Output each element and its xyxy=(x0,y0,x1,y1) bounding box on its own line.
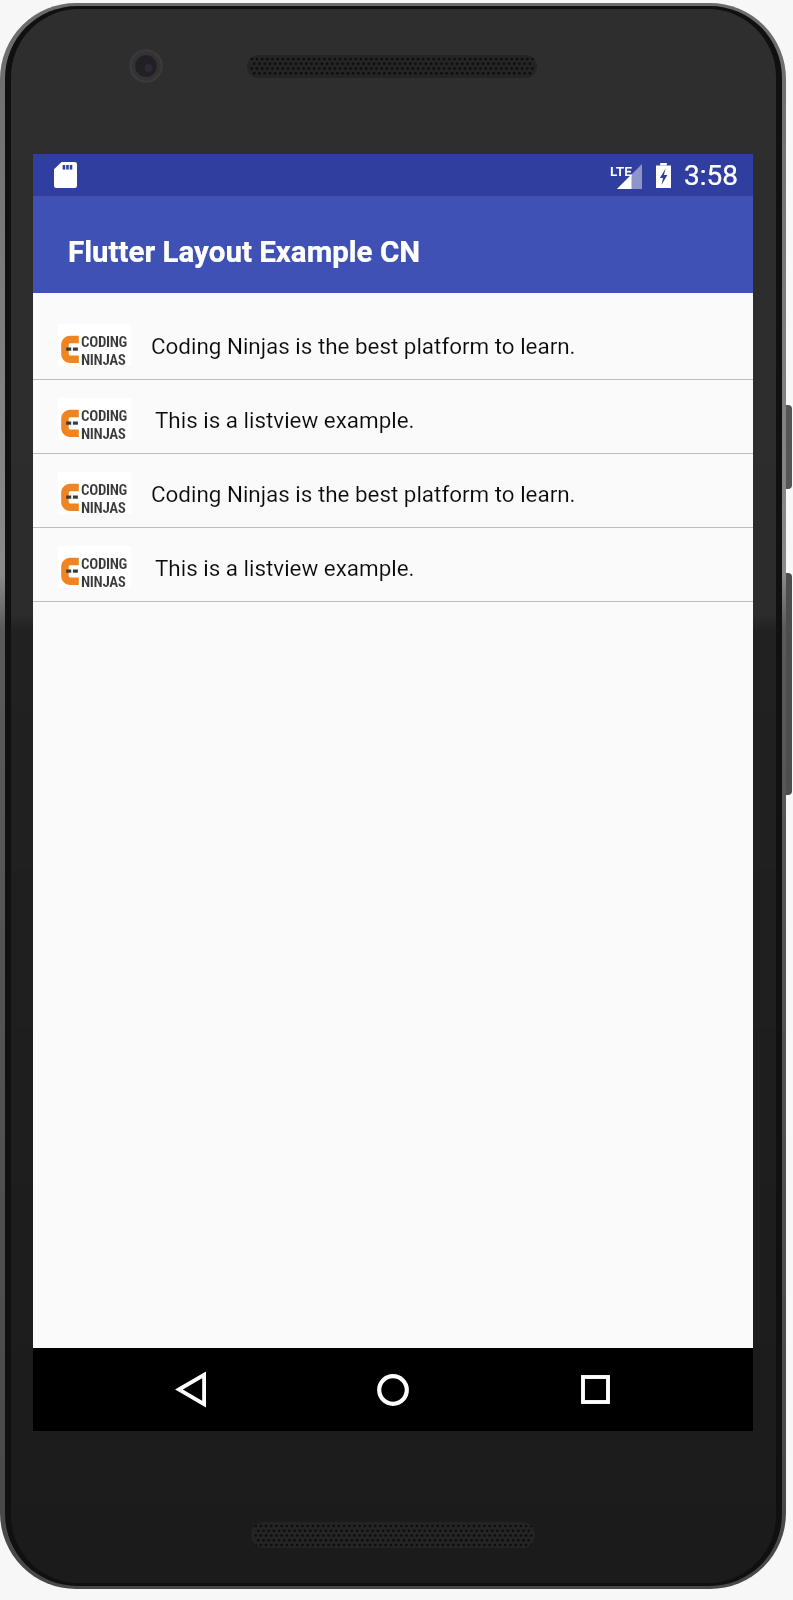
staticText: NINJAS xyxy=(81,499,126,517)
staticText: LTE xyxy=(610,163,632,179)
staticText: Flutter Layout Example CN xyxy=(68,235,421,270)
button[interactable]: Home xyxy=(343,1348,443,1431)
button[interactable]: CODING xyxy=(33,454,753,527)
button[interactable]: CODING xyxy=(33,306,753,379)
button[interactable]: Back xyxy=(141,1348,241,1431)
staticText: NINJAS xyxy=(81,573,126,591)
staticText: NINJAS xyxy=(81,351,126,369)
staticText: Coding Ninjas is the best platform to le… xyxy=(151,333,576,359)
staticText: CODING xyxy=(81,481,128,499)
staticText: This is a listview example. xyxy=(155,407,415,433)
staticText: CODING xyxy=(81,555,128,573)
button[interactable]: CODING xyxy=(33,380,753,453)
staticText: CODING xyxy=(81,407,128,425)
button[interactable]: Recent apps xyxy=(545,1348,645,1431)
staticText: Coding Ninjas is the best platform to le… xyxy=(151,481,576,507)
staticText: CODING xyxy=(81,333,128,351)
staticText: This is a listview example. xyxy=(155,555,415,581)
staticText: 3:58 xyxy=(684,159,738,192)
button[interactable]: CODING xyxy=(33,528,753,601)
staticText: NINJAS xyxy=(81,425,126,443)
